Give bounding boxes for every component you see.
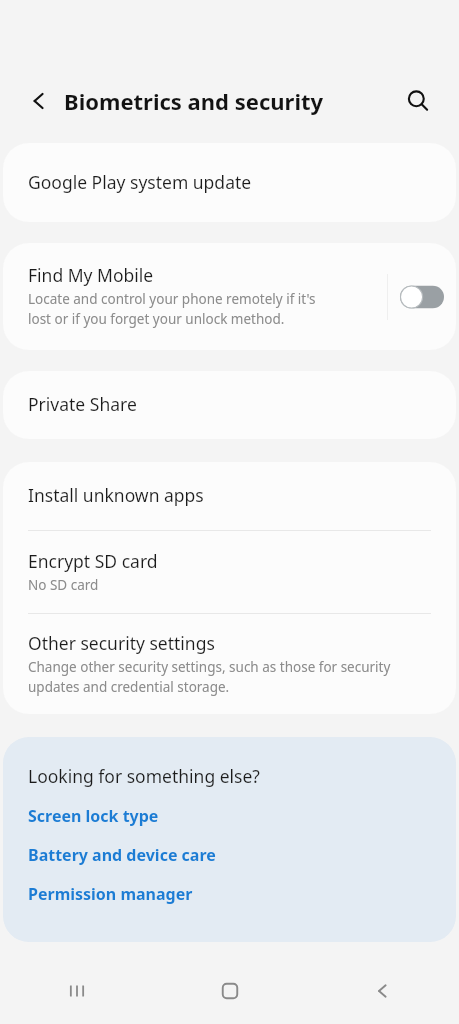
- button[interactable]: Install unknown apps: [3, 462, 456, 530]
- button[interactable]: Back: [18, 80, 60, 122]
- staticText: Screen lock type: [28, 805, 159, 827]
- button[interactable]: Search: [397, 80, 439, 122]
- button[interactable]: Home: [153, 958, 306, 1024]
- button[interactable]: Back: [306, 958, 459, 1024]
- staticText: Find My Mobile: [28, 265, 154, 287]
- button[interactable]: Private Share: [3, 371, 456, 439]
- button[interactable]: Google Play system update: [3, 143, 456, 222]
- staticText: Change other security settings, such as …: [28, 658, 391, 696]
- button[interactable]: Recent apps: [0, 958, 153, 1024]
- staticText: Locate and control your phone remotely i…: [28, 290, 316, 328]
- staticText: Private Share: [28, 394, 137, 416]
- staticText: Battery and device care: [28, 844, 216, 866]
- button[interactable]: Find My Mobile toggle: [388, 285, 456, 309]
- staticText: Google Play system update: [28, 172, 252, 194]
- staticText: Permission manager: [28, 883, 193, 905]
- staticText: Other security settings: [28, 633, 215, 655]
- staticText: No SD card: [28, 576, 99, 594]
- staticText: Encrypt SD card: [28, 551, 158, 573]
- button[interactable]: Permission manager: [28, 883, 193, 905]
- button[interactable]: Screen lock type: [28, 805, 159, 827]
- button[interactable]: Battery and device care: [28, 844, 216, 866]
- button[interactable]: Find My Mobile: [3, 243, 456, 350]
- staticText: Install unknown apps: [28, 485, 204, 507]
- staticText: Biometrics and security: [64, 86, 324, 116]
- staticText: Looking for something else?: [28, 766, 260, 788]
- button[interactable]: Encrypt SD card: [3, 531, 456, 613]
- button[interactable]: Other security settings: [3, 614, 456, 714]
